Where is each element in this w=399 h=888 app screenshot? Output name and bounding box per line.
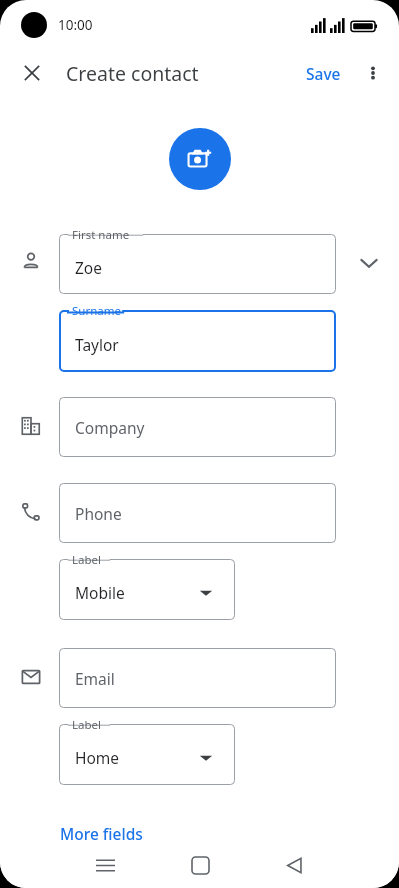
button[interactable]: Save [294, 51, 352, 95]
staticText: Zoe [75, 257, 102, 278]
button[interactable]: Surname [59, 310, 336, 372]
button[interactable]: Add photo [169, 128, 231, 190]
button[interactable]: Back [274, 845, 314, 885]
button[interactable]: Recent apps [85, 845, 125, 885]
button[interactable]: Email [59, 648, 336, 708]
staticText: First name [72, 227, 130, 243]
staticText: 10:00 [58, 16, 93, 34]
staticText: Email [75, 668, 115, 689]
button[interactable]: Phone [59, 483, 336, 543]
staticText: Home [75, 747, 120, 768]
button[interactable]: Label [59, 559, 235, 620]
button[interactable]: First name [59, 234, 336, 294]
staticText: Create contact [66, 60, 199, 87]
staticText: Label [72, 717, 102, 733]
button[interactable]: Company [59, 397, 336, 457]
staticText: Taylor [75, 334, 119, 355]
button[interactable]: Expand name fields [350, 244, 388, 282]
button[interactable]: More fields [52, 818, 162, 848]
staticText: More fields [60, 823, 143, 844]
button[interactable]: Label [59, 724, 235, 785]
staticText: Company [75, 417, 145, 438]
staticText: Mobile [75, 582, 125, 603]
button[interactable]: More options [351, 51, 395, 95]
staticText: Label [72, 552, 102, 568]
staticText: Phone [75, 503, 122, 524]
button[interactable]: Close [8, 49, 56, 97]
staticText: Save [306, 63, 341, 84]
button[interactable]: Home [180, 845, 220, 885]
staticText: Surname [72, 303, 121, 319]
